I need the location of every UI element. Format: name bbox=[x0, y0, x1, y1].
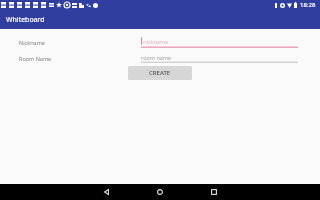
button[interactable]: Back bbox=[92, 184, 120, 200]
staticText: CREATE bbox=[149, 69, 171, 77]
button[interactable]: room name bbox=[141, 52, 298, 63]
button[interactable]: Whiteboard bbox=[0, 10, 320, 29]
staticText: Whiteboard bbox=[6, 15, 45, 25]
button[interactable]: Home bbox=[146, 184, 174, 200]
staticText: 18:28 bbox=[300, 1, 316, 9]
button[interactable]: CREATE bbox=[128, 66, 192, 80]
staticText: room name bbox=[141, 54, 172, 61]
staticText: Room Name bbox=[19, 55, 52, 62]
staticText: nickname bbox=[143, 38, 169, 45]
staticText: Nickname bbox=[19, 39, 45, 46]
button[interactable]: nickname bbox=[141, 36, 298, 47]
button[interactable]: Recent apps bbox=[200, 184, 228, 200]
